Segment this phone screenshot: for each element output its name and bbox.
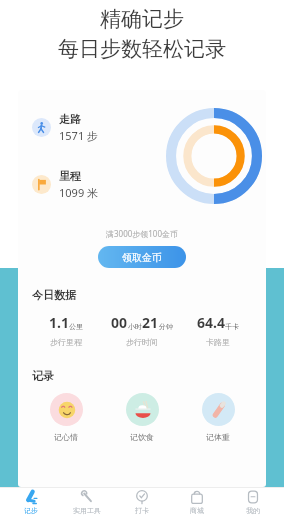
staticText: 公里 xyxy=(69,322,83,331)
staticText: 64.4 xyxy=(197,313,225,332)
button[interactable]: 64.4 xyxy=(180,313,256,347)
button[interactable]: 领取金币 xyxy=(98,246,186,268)
button[interactable]: 记心情 xyxy=(28,393,104,442)
staticText: 商城 xyxy=(190,506,204,515)
staticText: 实用工具 xyxy=(73,506,101,515)
staticText: 千卡 xyxy=(225,322,239,331)
staticText: 记体重 xyxy=(206,432,230,442)
staticText: 记录 xyxy=(32,369,54,383)
button[interactable]: 记步 xyxy=(7,490,55,521)
staticText: 打卡 xyxy=(135,506,149,515)
staticText: 21 xyxy=(142,313,159,332)
button[interactable]: 我的 xyxy=(229,490,277,521)
staticText: 记步 xyxy=(24,506,38,515)
staticText: 小时 xyxy=(128,322,142,331)
staticText: 精确记步 xyxy=(0,6,284,32)
staticText: 满3000步领100金币 xyxy=(18,228,266,239)
staticText: 领取金币 xyxy=(122,251,162,264)
button[interactable]: 1.1 xyxy=(28,313,104,347)
staticText: 今日数据 xyxy=(32,288,76,302)
button[interactable]: 打卡 xyxy=(118,490,166,521)
staticText: 步行时间 xyxy=(126,337,158,347)
button[interactable]: 记饮食 xyxy=(104,393,180,442)
staticText: 我的 xyxy=(246,506,260,515)
staticText: 卡路里 xyxy=(206,337,230,347)
button[interactable]: 00 xyxy=(104,313,180,347)
staticText: 记心情 xyxy=(54,432,78,442)
staticText: 分钟 xyxy=(159,322,173,331)
staticText: 每日步数轻松记录 xyxy=(0,36,284,62)
staticText: 1.1 xyxy=(49,313,69,332)
staticText: 00 xyxy=(111,313,128,332)
button[interactable]: 实用工具 xyxy=(63,490,111,521)
staticText: 1571 步 xyxy=(59,128,99,143)
staticText: 记饮食 xyxy=(130,432,154,442)
staticText: 走路 xyxy=(59,112,81,126)
button[interactable]: 记体重 xyxy=(180,393,256,442)
staticText: 1099 米 xyxy=(59,185,99,200)
staticText: 里程 xyxy=(59,169,81,183)
button[interactable]: 商城 xyxy=(173,490,221,521)
staticText: 步行里程 xyxy=(50,337,82,347)
